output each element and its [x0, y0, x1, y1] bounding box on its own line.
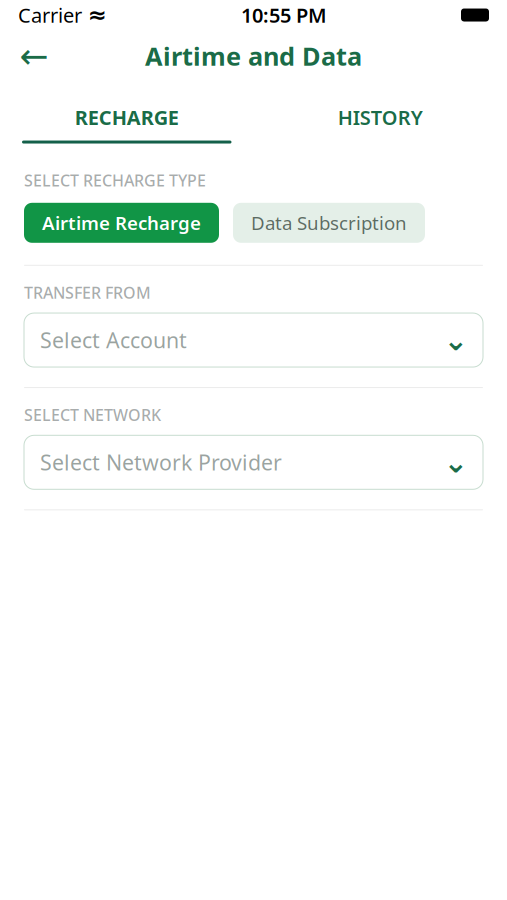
- staticText: RECHARGE: [75, 104, 179, 131]
- button[interactable]: Select Network Provider: [24, 435, 483, 489]
- staticText: Select Network Provider: [40, 448, 282, 476]
- staticText: HISTORY: [338, 104, 423, 131]
- button[interactable]: Airtime Recharge: [24, 203, 219, 243]
- staticText: Airtime and Data: [145, 39, 362, 73]
- staticText: ⌄: [443, 323, 468, 357]
- staticText: SELECT RECHARGE TYPE: [24, 170, 206, 191]
- button[interactable]: HISTORY: [253, 104, 507, 144]
- button[interactable]: Back: [12, 34, 56, 78]
- staticText: Airtime Recharge: [42, 210, 201, 235]
- staticText: Select Account: [40, 326, 187, 354]
- staticText: ⌄: [443, 446, 468, 479]
- staticText: SELECT NETWORK: [24, 404, 161, 425]
- button[interactable]: Data Subscription: [233, 203, 425, 243]
- staticText: Carrier: [18, 2, 82, 28]
- button[interactable]: RECHARGE: [0, 104, 253, 144]
- staticText: Data Subscription: [251, 210, 407, 235]
- staticText: TRANSFER FROM: [24, 282, 151, 303]
- staticText: ≈: [88, 2, 107, 28]
- staticText: 10:55 PM: [241, 2, 327, 28]
- staticText: ←: [19, 36, 48, 76]
- button[interactable]: Select Account: [24, 313, 483, 367]
